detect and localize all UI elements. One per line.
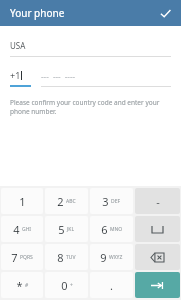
staticText: 1 xyxy=(19,194,26,209)
staticText: Please confirm your country code and ent… xyxy=(10,98,171,116)
button[interactable]: 4 xyxy=(1,216,43,242)
staticText: +1 xyxy=(10,69,21,81)
button[interactable]: 1 xyxy=(1,188,43,214)
button[interactable]: 3 xyxy=(90,188,133,214)
button[interactable]: 8 xyxy=(45,244,88,270)
staticText: 6 xyxy=(101,222,108,237)
staticText: 2 xyxy=(57,194,64,209)
staticText: --- --- ---- xyxy=(41,71,76,82)
staticText: 4 xyxy=(13,222,20,237)
staticText: 9 xyxy=(100,250,107,265)
button[interactable]: Space xyxy=(135,216,180,242)
staticText: JKL xyxy=(67,226,75,233)
staticText: 7 xyxy=(11,250,18,265)
staticText: 0 xyxy=(61,278,68,293)
button[interactable]: USA xyxy=(10,40,171,57)
button[interactable]: - xyxy=(135,188,180,214)
staticText: 5 xyxy=(58,222,65,237)
staticText: WXYZ xyxy=(109,254,123,261)
button[interactable]: 6 xyxy=(90,216,133,242)
staticText: # xyxy=(25,282,29,289)
button[interactable]: 2 xyxy=(45,188,88,214)
staticText: TUV xyxy=(66,254,76,261)
staticText: . xyxy=(110,278,113,293)
button[interactable]: +1 xyxy=(10,69,31,87)
button[interactable]: Confirm xyxy=(157,5,173,21)
button[interactable]: * xyxy=(1,272,43,298)
button[interactable]: 9 xyxy=(90,244,133,270)
button[interactable]: 7 xyxy=(1,244,43,270)
staticText: + xyxy=(70,282,73,289)
staticText: ABC xyxy=(66,198,76,205)
button[interactable]: 0 xyxy=(45,272,88,298)
button[interactable]: . xyxy=(90,272,133,298)
button[interactable]: 5 xyxy=(45,216,88,242)
staticText: 3 xyxy=(102,194,109,209)
staticText: * xyxy=(16,278,23,293)
staticText: USA xyxy=(10,40,26,51)
button[interactable]: Next xyxy=(135,272,180,298)
staticText: GHI xyxy=(22,226,32,233)
staticText: - xyxy=(156,194,160,209)
staticText: Your phone xyxy=(10,6,65,20)
button[interactable]: --- --- ---- xyxy=(41,71,171,87)
staticText: MNO xyxy=(110,226,123,233)
staticText: 8 xyxy=(57,250,64,265)
staticText: PQRS xyxy=(20,254,33,261)
button[interactable]: Backspace xyxy=(135,244,180,270)
staticText: DEF xyxy=(111,198,121,205)
